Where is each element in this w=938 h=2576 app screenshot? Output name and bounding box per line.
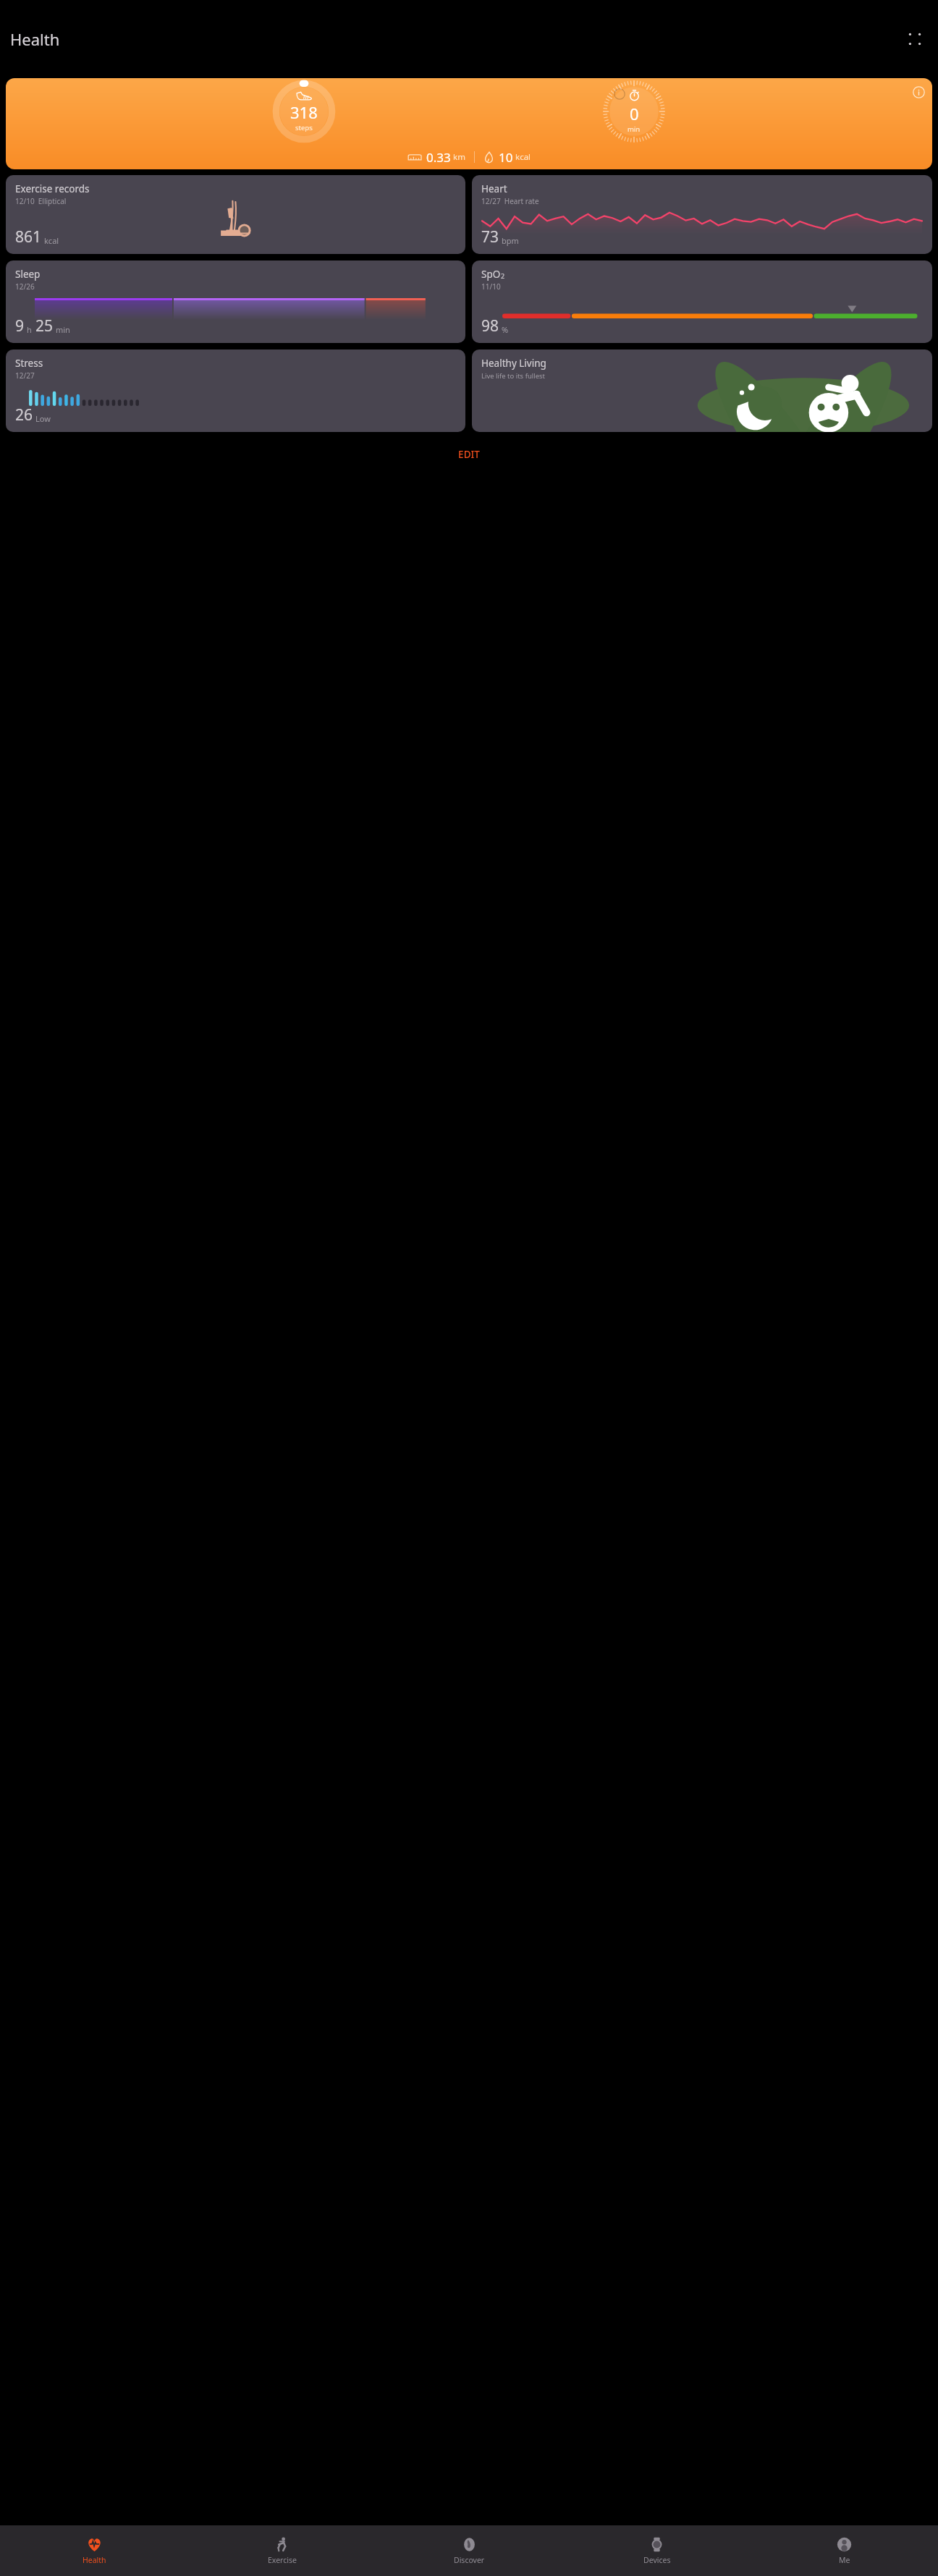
staticText: h: [27, 324, 32, 335]
staticText: Me: [839, 2555, 850, 2565]
staticText: Exercise records: [15, 182, 90, 195]
staticText: %: [502, 324, 509, 335]
staticText: 26: [15, 404, 33, 425]
staticText: Sleep: [15, 268, 41, 281]
staticText: 12/27: [15, 370, 35, 381]
staticText: kcal: [44, 235, 59, 246]
staticText: 10: [499, 149, 513, 166]
staticText: km: [453, 151, 465, 163]
staticText: 0: [630, 103, 639, 124]
staticText: min: [628, 124, 641, 134]
staticText: Exercise: [268, 2555, 297, 2565]
staticText: Discover: [454, 2555, 485, 2565]
staticText: 9: [15, 315, 25, 336]
staticText: 25: [35, 315, 54, 336]
staticText: 318: [290, 101, 318, 123]
staticText: Healthy Living: [481, 357, 546, 370]
staticText: 98: [481, 315, 499, 336]
button[interactable]: Info: [6, 78, 932, 169]
staticText: Heart: [481, 182, 507, 195]
staticText: Health: [10, 28, 60, 50]
button[interactable]: EDIT: [0, 432, 938, 477]
button[interactable]: Sleep: [6, 260, 465, 343]
staticText: steps: [295, 123, 313, 132]
staticText: Live life to its fullest: [481, 371, 546, 381]
staticText: Devices: [643, 2555, 671, 2565]
button[interactable]: Stress: [6, 349, 465, 432]
button[interactable]: Heart: [472, 175, 932, 254]
button[interactable]: Health: [0, 2525, 188, 2576]
staticText: Stress: [15, 357, 43, 370]
staticText: Health: [83, 2555, 106, 2565]
staticText: 2: [501, 271, 505, 280]
button[interactable]: Me: [751, 2525, 938, 2576]
button[interactable]: SpO: [472, 260, 932, 343]
staticText: SpO: [481, 268, 501, 281]
staticText: 0.33: [426, 149, 451, 166]
staticText: EDIT: [458, 448, 480, 461]
staticText: 861: [15, 226, 42, 247]
button[interactable]: Healthy Living: [472, 349, 932, 432]
button[interactable]: Exercise records: [6, 175, 465, 254]
staticText: Low: [35, 413, 51, 424]
staticText: 73: [481, 226, 499, 247]
button[interactable]: Exercise: [188, 2525, 376, 2576]
button[interactable]: More options: [899, 23, 931, 55]
staticText: bpm: [502, 235, 519, 246]
staticText: 12/27 Heart rate: [481, 196, 539, 206]
staticText: 12/10 Elliptical: [15, 196, 67, 206]
button[interactable]: Devices: [563, 2525, 751, 2576]
staticText: kcal: [515, 151, 531, 163]
staticText: min: [56, 324, 70, 335]
button[interactable]: Discover: [376, 2525, 563, 2576]
staticText: 11/10: [481, 281, 501, 292]
staticText: 12/26: [15, 281, 35, 292]
button[interactable]: Info: [909, 82, 928, 101]
